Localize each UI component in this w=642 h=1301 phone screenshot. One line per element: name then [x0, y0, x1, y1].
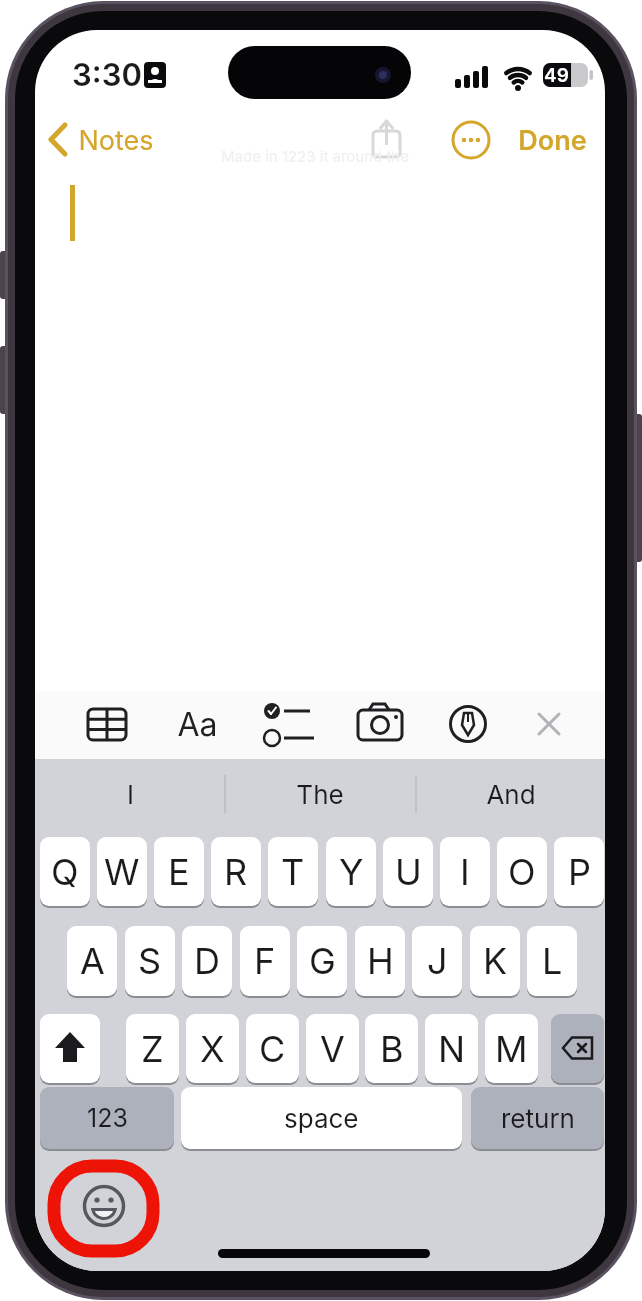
staticText: C [259, 1027, 286, 1071]
staticText: H [367, 939, 394, 983]
staticText: S [138, 939, 162, 983]
staticText: F [254, 939, 276, 983]
staticText: L [542, 939, 563, 983]
staticText: Done [518, 124, 587, 157]
staticText: I [127, 779, 134, 810]
staticText: P [568, 850, 591, 894]
staticText: Q [51, 850, 79, 894]
staticText: X [200, 1027, 225, 1071]
staticText: J [427, 939, 448, 983]
staticText: return [501, 1103, 575, 1134]
staticText: K [483, 939, 508, 983]
staticText: M [495, 1027, 528, 1071]
staticText: U [395, 850, 422, 894]
staticText: O [508, 850, 536, 894]
staticText: 123 [87, 1103, 128, 1133]
staticText: W [104, 850, 140, 894]
staticText: Notes [78, 124, 154, 157]
staticText: Aa [177, 705, 218, 744]
staticText: And [486, 779, 536, 810]
staticText: G [309, 939, 336, 983]
staticText: N [438, 1027, 466, 1071]
staticText: T [281, 850, 305, 894]
staticText: Z [141, 1027, 164, 1071]
staticText: B [380, 1027, 404, 1071]
staticText: Made in 1223 it around the [221, 147, 409, 165]
staticText: R [224, 850, 248, 894]
staticText: 49 [544, 64, 569, 87]
staticText: A [80, 939, 105, 983]
staticText: I [460, 850, 470, 894]
staticText: V [320, 1027, 345, 1071]
staticText: 3:30 [72, 56, 142, 94]
staticText: Y [339, 850, 364, 894]
staticText: E [168, 850, 190, 894]
staticText: D [194, 939, 220, 983]
staticText: The [296, 779, 344, 810]
staticText: space [284, 1103, 359, 1134]
